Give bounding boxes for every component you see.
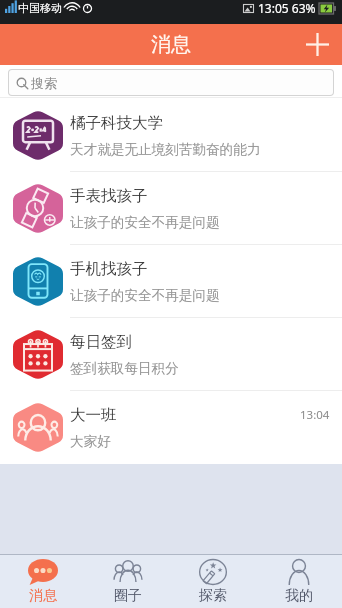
button[interactable]: 手表找孩子 bbox=[0, 172, 342, 245]
staticText: 我的 bbox=[285, 587, 313, 605]
staticText: 搜索 bbox=[31, 75, 57, 91]
button[interactable]: 消息 bbox=[0, 555, 85, 608]
staticText: 消息 bbox=[151, 32, 191, 57]
staticText: 橘子科技大学 bbox=[70, 113, 163, 133]
staticText: 大一班 bbox=[70, 405, 117, 425]
button[interactable]: 探索 bbox=[170, 555, 256, 608]
staticText: 让孩子的安全不再是问题 bbox=[70, 287, 220, 304]
staticText: 手表找孩子 bbox=[70, 186, 148, 206]
staticText: 大家好 bbox=[70, 433, 111, 450]
button[interactable]: 每日签到 bbox=[0, 318, 342, 391]
staticText: 天才就是无止境刻苦勤奋的能力 bbox=[70, 141, 261, 158]
staticText: 手机找孩子 bbox=[70, 259, 148, 279]
staticText: 13:04 bbox=[300, 407, 330, 423]
button[interactable]: 我的 bbox=[256, 555, 342, 608]
button[interactable]: 搜索 bbox=[9, 70, 333, 95]
staticText: 消息 bbox=[29, 587, 57, 605]
button[interactable]: 大一班 bbox=[0, 391, 342, 464]
staticText: 圈子 bbox=[114, 587, 142, 605]
staticText: 签到获取每日积分 bbox=[70, 360, 179, 377]
button[interactable]: 橘子科技大学 bbox=[0, 98, 342, 172]
staticText: 每日签到 bbox=[70, 332, 132, 352]
staticText: 让孩子的安全不再是问题 bbox=[70, 214, 220, 231]
staticText: 探索 bbox=[199, 587, 227, 605]
button[interactable]: 手机找孩子 bbox=[0, 245, 342, 318]
staticText: 13:05 63% bbox=[258, 0, 316, 16]
staticText: 中国移动 bbox=[18, 1, 62, 15]
button[interactable]: 圈子 bbox=[85, 555, 170, 608]
button[interactable]: Add bbox=[292, 24, 342, 65]
